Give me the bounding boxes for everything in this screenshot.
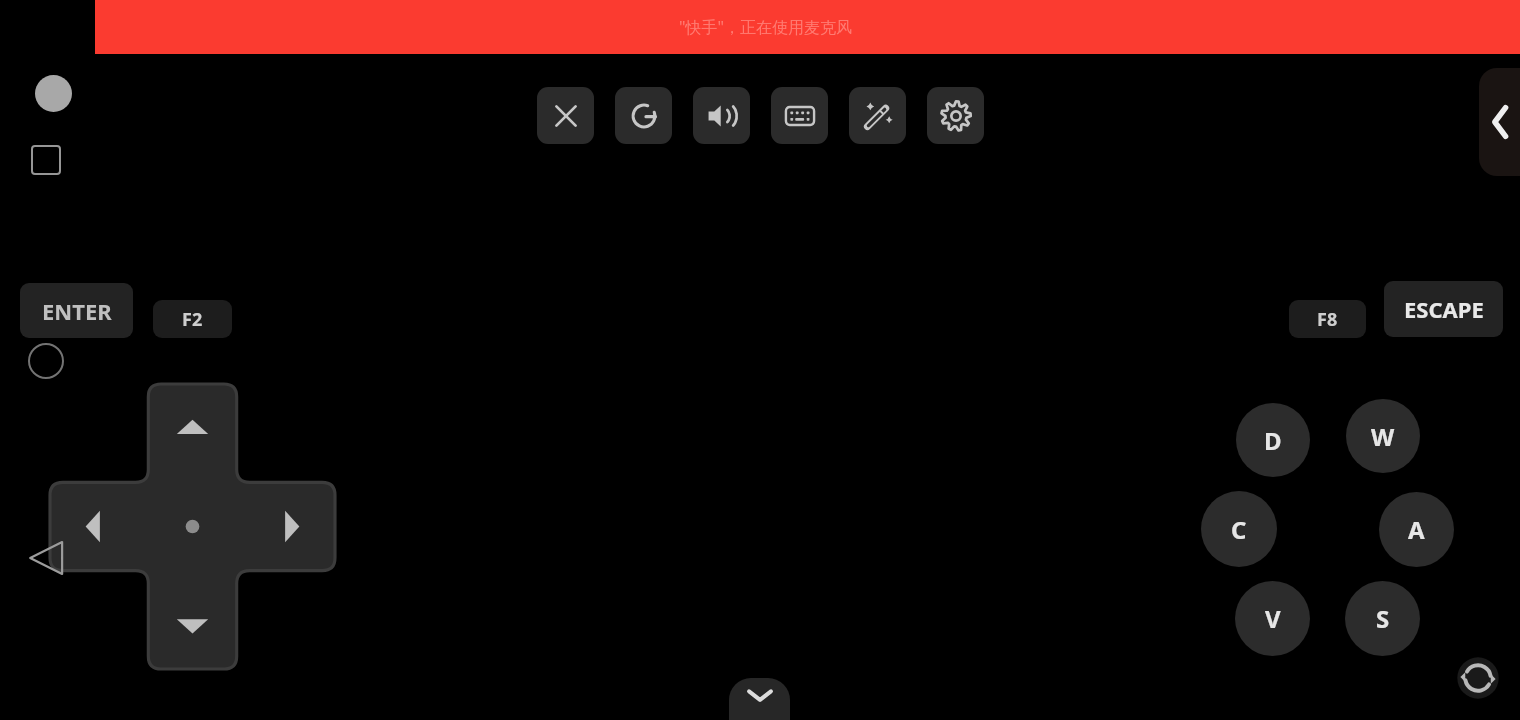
button[interactable]: Rotate: [1456, 656, 1500, 700]
button[interactable]: V: [1235, 581, 1310, 656]
staticText: S: [1376, 602, 1390, 635]
button[interactable]: Joystick: [35, 75, 72, 112]
button[interactable]: A: [1379, 492, 1454, 567]
button[interactable]: D: [1236, 403, 1310, 477]
button[interactable]: Settings: [927, 87, 984, 144]
staticText: W: [1371, 420, 1395, 453]
button[interactable]: Volume: [693, 87, 750, 144]
button[interactable]: Reload: [615, 87, 672, 144]
staticText: F2: [182, 307, 203, 332]
button[interactable]: Enhance: [849, 87, 906, 144]
button[interactable]: S: [1345, 581, 1420, 656]
button[interactable]: Left key: [26, 537, 68, 579]
staticText: A: [1408, 513, 1425, 546]
staticText: ENTER: [42, 296, 112, 326]
staticText: ESCAPE: [1404, 294, 1484, 324]
button[interactable]: F2: [153, 300, 232, 338]
button[interactable]: ESCAPE: [1384, 281, 1503, 337]
button[interactable]: "快手"，正在使用麦克风: [95, 0, 1520, 54]
button[interactable]: Direction pad: [50, 384, 335, 669]
button[interactable]: F8: [1289, 300, 1366, 338]
button[interactable]: Round key: [28, 343, 64, 379]
button[interactable]: Close: [537, 87, 594, 144]
staticText: C: [1231, 513, 1247, 546]
staticText: F8: [1317, 307, 1338, 332]
button[interactable]: Square key: [31, 145, 61, 175]
staticText: "快手"，正在使用麦克风: [679, 16, 853, 38]
button[interactable]: Keyboard: [771, 87, 828, 144]
button[interactable]: C: [1201, 491, 1277, 567]
button[interactable]: ENTER: [20, 283, 133, 338]
button[interactable]: Open panel: [1479, 68, 1520, 176]
button[interactable]: Collapse: [729, 678, 790, 720]
staticText: V: [1265, 602, 1281, 635]
staticText: D: [1264, 424, 1282, 457]
button[interactable]: W: [1346, 399, 1420, 473]
